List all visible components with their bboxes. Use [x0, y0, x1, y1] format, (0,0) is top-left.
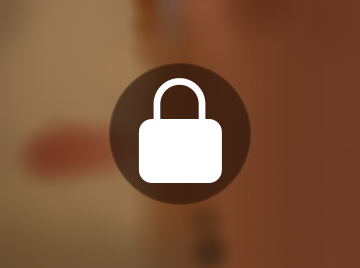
button[interactable]: Unlock: [108, 62, 251, 205]
